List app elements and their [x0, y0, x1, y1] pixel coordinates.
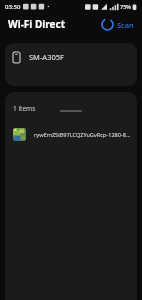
- button[interactable]: Scanning: [99, 16, 136, 33]
- staticText: 75%: [120, 3, 131, 10]
- staticText: Scan: [117, 20, 134, 30]
- staticText: Wi-Fi Direct: [8, 17, 65, 31]
- other: Scanning: [101, 18, 114, 31]
- button[interactable]: rywEmZSiB97LCQZYuGvRcp-1280-80.jpg: [5, 125, 137, 144]
- button[interactable]: SM-A305F: [5, 43, 137, 86]
- staticText: 1 items: [13, 104, 36, 113]
- staticText: rywEmZSiB97LCQZYuGvRcp-1280-80.jpg: [34, 131, 131, 139]
- staticText: 03:50: [5, 3, 21, 11]
- staticText: SM-A305F: [29, 52, 64, 62]
